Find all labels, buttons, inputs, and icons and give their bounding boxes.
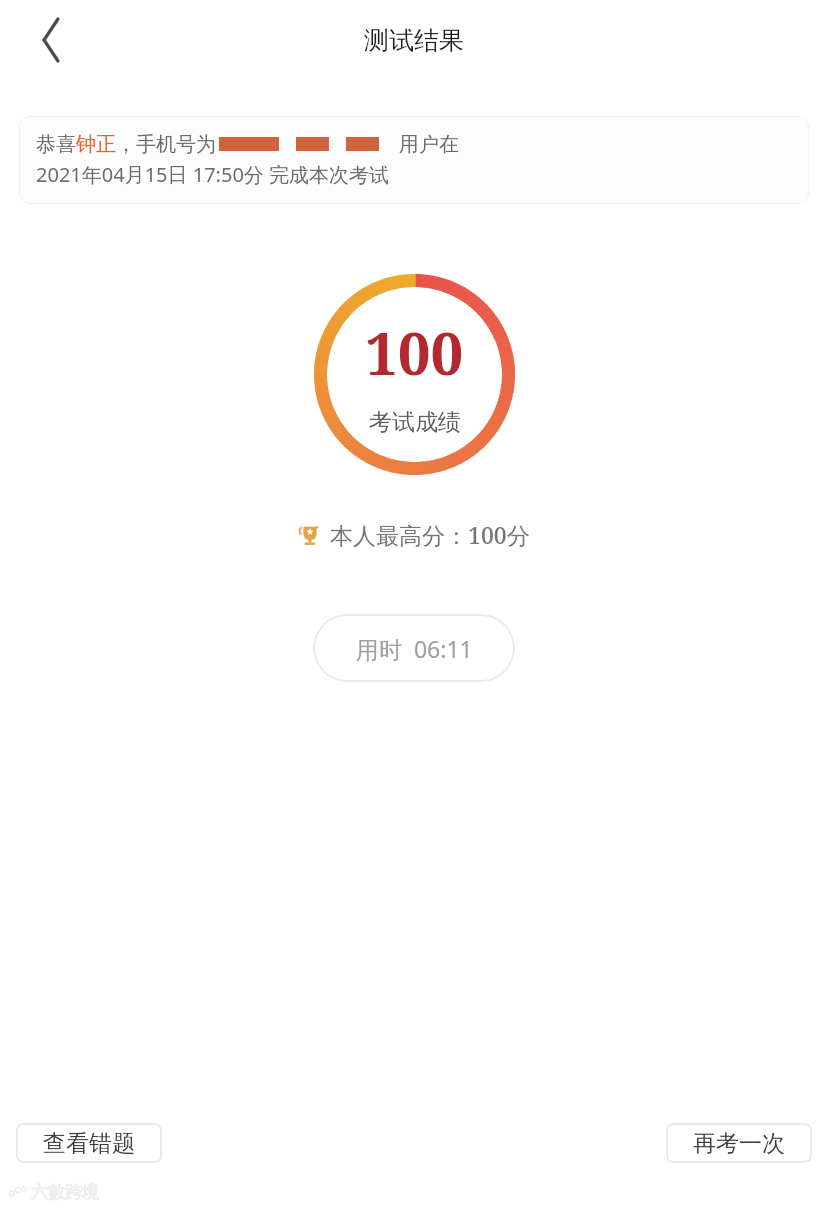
staticText: 考试成绩 [369, 408, 461, 437]
button[interactable]: 再考一次 [666, 1123, 812, 1163]
staticText: 100 [365, 313, 464, 392]
staticText: 2021年04月15日 17:50分 完成本次考试 [36, 161, 390, 188]
staticText: 本人最高分：100分 [330, 519, 530, 550]
staticText: 钟正 [76, 132, 116, 157]
staticText: 测试结果 [364, 25, 464, 56]
staticText: 查看错题 [43, 1129, 135, 1158]
staticText: ，手机号为 [116, 132, 216, 157]
staticText: 用时 06:11 [356, 633, 473, 664]
button[interactable]: 用时 06:11 [313, 614, 515, 682]
staticText: 恭喜 [36, 132, 76, 157]
staticText: 用户在 [399, 132, 459, 157]
button[interactable]: 恭喜 [19, 116, 809, 204]
button[interactable]: Back [18, 10, 78, 70]
button[interactable]: 查看错题 [16, 1123, 162, 1163]
staticText: 六數跨境 [31, 1182, 99, 1203]
staticText: 再考一次 [693, 1129, 785, 1158]
